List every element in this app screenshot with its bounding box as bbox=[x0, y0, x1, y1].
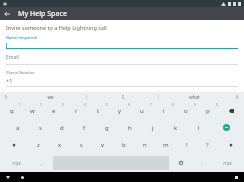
button[interactable]: g bbox=[95, 120, 118, 135]
staticText: w bbox=[30, 107, 35, 115]
button[interactable]: s bbox=[29, 120, 51, 135]
button[interactable]: o bbox=[175, 103, 197, 118]
button[interactable]: Back bbox=[5, 174, 11, 180]
button[interactable]: Home bbox=[19, 174, 25, 180]
button[interactable]: b bbox=[113, 137, 134, 153]
staticText: h bbox=[128, 124, 132, 132]
button[interactable]: m bbox=[155, 137, 176, 153]
button[interactable]: t bbox=[87, 103, 109, 118]
staticText: c bbox=[80, 141, 83, 149]
button[interactable]: u bbox=[131, 103, 153, 118]
staticText: 4 bbox=[84, 103, 86, 107]
staticText: +1 bbox=[6, 77, 13, 84]
staticText: Name (required) bbox=[6, 35, 37, 40]
button[interactable]: e bbox=[43, 103, 65, 118]
staticText: k bbox=[174, 124, 178, 132]
button[interactable]: ? bbox=[197, 137, 218, 153]
button[interactable]: a bbox=[7, 120, 29, 135]
button[interactable]: c bbox=[71, 137, 92, 153]
staticText: v bbox=[101, 141, 105, 149]
button[interactable]: j bbox=[141, 120, 164, 135]
button[interactable]: Email bbox=[6, 54, 238, 65]
button[interactable]: Phone Number bbox=[6, 70, 238, 87]
button[interactable]: p bbox=[197, 103, 219, 118]
staticText: 0 bbox=[216, 103, 218, 107]
staticText: u bbox=[140, 107, 144, 115]
staticText: n bbox=[143, 141, 147, 149]
staticText: . bbox=[201, 160, 203, 167]
button[interactable]: Emoji bbox=[170, 155, 192, 171]
staticText: what bbox=[189, 94, 200, 100]
staticText: g bbox=[105, 124, 109, 132]
staticText: e bbox=[52, 107, 56, 115]
button[interactable]: d bbox=[51, 120, 73, 135]
button[interactable]: i bbox=[153, 103, 175, 118]
button[interactable]: l bbox=[187, 120, 210, 135]
button[interactable]: I bbox=[87, 92, 158, 102]
button[interactable]: r bbox=[65, 103, 87, 118]
staticText: 8 bbox=[172, 103, 174, 107]
staticText: r bbox=[75, 107, 78, 115]
button[interactable]: h bbox=[118, 120, 141, 135]
staticText: ?123 bbox=[223, 161, 232, 166]
button[interactable]: Recents bbox=[233, 174, 239, 180]
staticText: 1 bbox=[19, 103, 21, 107]
staticText: y bbox=[118, 107, 122, 115]
staticText: z bbox=[37, 141, 40, 149]
button[interactable]: v bbox=[92, 137, 113, 153]
staticText: My Help Space bbox=[18, 9, 67, 19]
button[interactable]: x bbox=[49, 137, 71, 153]
button[interactable]: Shift bbox=[218, 137, 243, 153]
button[interactable]: y bbox=[109, 103, 131, 118]
button[interactable]: z bbox=[27, 137, 49, 153]
button[interactable]: Name (required) bbox=[6, 35, 238, 49]
staticText: p bbox=[206, 107, 210, 115]
staticText: Email bbox=[6, 54, 19, 61]
button[interactable]: q bbox=[1, 103, 22, 118]
staticText: , bbox=[41, 160, 43, 167]
staticText: s bbox=[39, 124, 42, 132]
button[interactable]: Back bbox=[0, 7, 13, 20]
button[interactable]: f bbox=[73, 120, 95, 135]
staticText: we bbox=[47, 94, 54, 100]
staticText: Phone Number bbox=[6, 70, 35, 75]
button[interactable]: ?123 bbox=[1, 155, 32, 171]
staticText: q bbox=[10, 107, 14, 115]
button[interactable]: k bbox=[164, 120, 187, 135]
staticText: 6 bbox=[128, 103, 130, 107]
staticText: j bbox=[152, 124, 154, 132]
staticText: 3 bbox=[62, 103, 64, 107]
button[interactable]: ! bbox=[176, 137, 197, 153]
button[interactable]: we bbox=[14, 92, 86, 102]
staticText: f bbox=[83, 124, 86, 132]
staticText: b bbox=[122, 141, 126, 149]
button[interactable]: Backspace bbox=[219, 103, 243, 118]
button[interactable] bbox=[1, 137, 27, 153]
staticText: I bbox=[122, 94, 124, 100]
staticText: ? bbox=[206, 141, 209, 149]
staticText: m bbox=[163, 141, 169, 149]
staticText: x bbox=[58, 141, 62, 149]
button[interactable]: w bbox=[22, 103, 43, 118]
button[interactable]: ?123 bbox=[212, 155, 243, 171]
button[interactable]: what bbox=[159, 92, 230, 102]
button[interactable]: More suggestions bbox=[4, 95, 8, 99]
button[interactable]: n bbox=[134, 137, 155, 153]
staticText: 2 bbox=[40, 103, 42, 107]
button[interactable]: Expand suggestions bbox=[235, 95, 239, 99]
staticText: Invite someone to a Help Lightning call bbox=[6, 24, 107, 31]
staticText: l bbox=[198, 124, 200, 132]
staticText: ?123 bbox=[12, 161, 21, 166]
staticText: ! bbox=[186, 141, 188, 149]
staticText: o bbox=[184, 107, 188, 115]
button[interactable]: , bbox=[32, 155, 52, 171]
staticText: d bbox=[60, 124, 64, 132]
staticText: i bbox=[163, 107, 165, 115]
staticText: 9 bbox=[194, 103, 196, 107]
staticText: a bbox=[16, 124, 20, 132]
staticText: 7 bbox=[150, 103, 152, 107]
button[interactable]: Enter bbox=[211, 120, 241, 135]
staticText: 5 bbox=[106, 103, 108, 107]
